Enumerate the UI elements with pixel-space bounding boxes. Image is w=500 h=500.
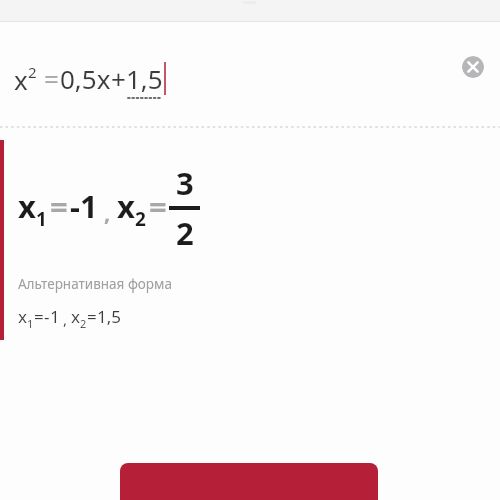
- staticText: 0,5x: [60, 61, 111, 96]
- staticText: x: [14, 62, 28, 94]
- staticText: 1,5: [126, 61, 163, 96]
- staticText: x: [71, 305, 80, 328]
- staticText: Альтернативная форма: [18, 275, 172, 293]
- staticText: 3: [176, 162, 194, 204]
- staticText: 1,5: [97, 305, 122, 328]
- staticText: 2: [80, 316, 87, 331]
- staticText: ,: [104, 197, 111, 227]
- staticText: ,: [63, 309, 68, 329]
- staticText: x: [117, 185, 135, 227]
- staticText: x: [18, 305, 27, 328]
- staticText: =: [87, 305, 97, 328]
- staticText: 1: [50, 305, 60, 328]
- staticText: =: [34, 305, 44, 328]
- button[interactable]: Continue: [120, 463, 378, 500]
- staticText: 2: [28, 62, 37, 82]
- staticText: -: [44, 305, 50, 328]
- button[interactable]: x: [18, 162, 200, 250]
- staticText: 1: [36, 206, 47, 232]
- staticText: -: [70, 185, 80, 227]
- staticText: 1: [27, 316, 34, 331]
- staticText: x: [18, 185, 36, 227]
- staticText: =: [44, 61, 59, 96]
- staticText: 1: [80, 185, 98, 227]
- staticText: 2: [176, 212, 194, 250]
- staticText: =: [50, 185, 68, 227]
- button[interactable]: Clear input: [462, 56, 484, 78]
- staticText: +: [111, 61, 126, 96]
- staticText: =: [149, 185, 167, 227]
- staticText: 2: [135, 206, 146, 232]
- button[interactable]: x: [14, 57, 166, 103]
